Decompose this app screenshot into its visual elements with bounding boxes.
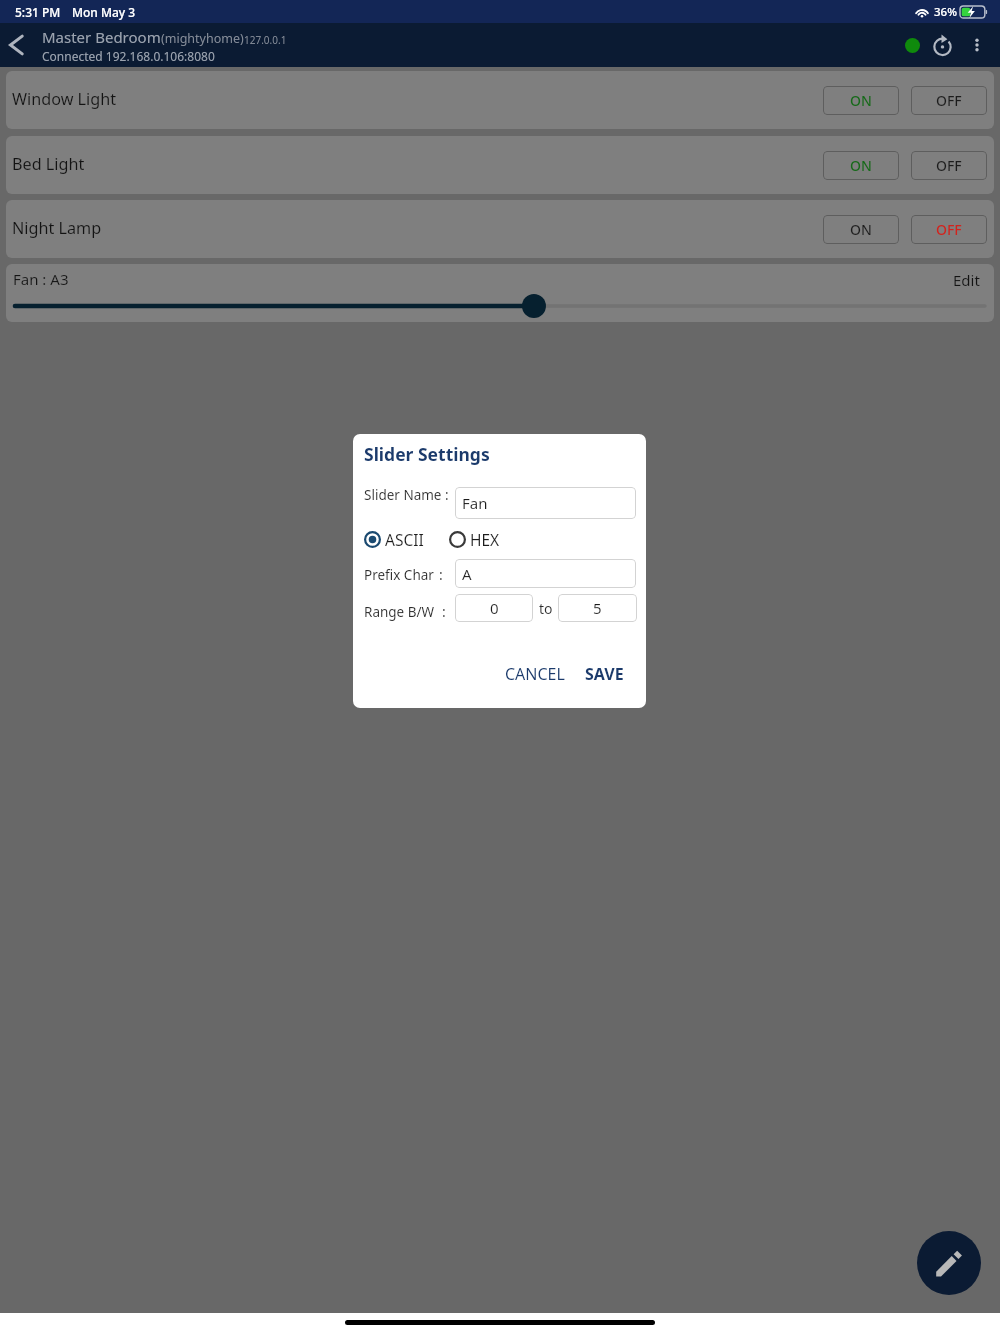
staticText: Night Lamp	[12, 217, 102, 239]
staticText: 5:31 PM	[15, 4, 61, 20]
button[interactable]: Night Lamp	[6, 200, 994, 258]
staticText: HEX	[470, 529, 500, 550]
staticText: Connected 192.168.0.106:8080	[42, 48, 215, 64]
staticText: ON	[850, 91, 872, 110]
staticText: Edit	[953, 270, 980, 290]
button[interactable]: CANCEL	[499, 660, 571, 688]
button[interactable]: OFF	[911, 215, 987, 244]
button[interactable]: Refresh	[924, 27, 960, 63]
staticText: :	[439, 565, 443, 584]
button[interactable]: ON	[823, 151, 899, 180]
button[interactable]: Bed Light	[6, 136, 994, 194]
staticText: OFF	[936, 220, 962, 239]
staticText: OFF	[936, 156, 962, 175]
button[interactable]: Fan	[455, 487, 636, 519]
staticText: ASCII	[385, 529, 424, 550]
button[interactable]: OFF	[911, 86, 987, 115]
staticText: 36%	[934, 4, 957, 20]
staticText: :	[442, 602, 446, 621]
staticText: Fan	[462, 493, 488, 513]
button[interactable]: SAVE	[579, 660, 630, 688]
staticText: Bed Light	[12, 153, 85, 175]
staticText: OFF	[936, 91, 962, 110]
staticText: Range B/W	[364, 603, 435, 621]
staticText: Prefix Char	[364, 566, 434, 584]
staticText: CANCEL	[505, 663, 565, 685]
staticText: Slider Settings	[364, 442, 490, 466]
button[interactable]: Edit	[917, 1231, 981, 1295]
button[interactable]: ON	[823, 86, 899, 115]
staticText: Mon May 3	[72, 4, 136, 20]
button[interactable]: 0	[455, 594, 533, 622]
staticText: ON	[850, 220, 872, 239]
staticText: 127.0.0.1	[244, 33, 287, 47]
staticText: ON	[850, 156, 872, 175]
button[interactable]: More options	[960, 28, 994, 62]
staticText: Fan : A3	[13, 269, 69, 289]
button[interactable]: ON	[823, 215, 899, 244]
button[interactable]: Window Light	[6, 71, 994, 129]
button[interactable]	[361, 528, 383, 550]
staticText: A	[462, 564, 472, 584]
button[interactable]	[446, 528, 468, 550]
button[interactable]	[6, 294, 994, 318]
button[interactable]: Back	[0, 25, 40, 65]
button[interactable]: OFF	[911, 151, 987, 180]
staticText: Master Bedroom	[42, 27, 161, 47]
staticText: 0	[490, 598, 499, 618]
button[interactable]: 5	[558, 594, 637, 622]
button[interactable]: A	[455, 559, 636, 588]
button[interactable]: Edit	[953, 270, 980, 290]
staticText: 5	[593, 598, 602, 618]
staticText: to	[539, 599, 553, 618]
staticText: (mightyhome)	[161, 30, 244, 47]
staticText: SAVE	[585, 663, 624, 685]
staticText: Window Light	[12, 88, 117, 110]
staticText: Slider Name :	[364, 486, 449, 504]
